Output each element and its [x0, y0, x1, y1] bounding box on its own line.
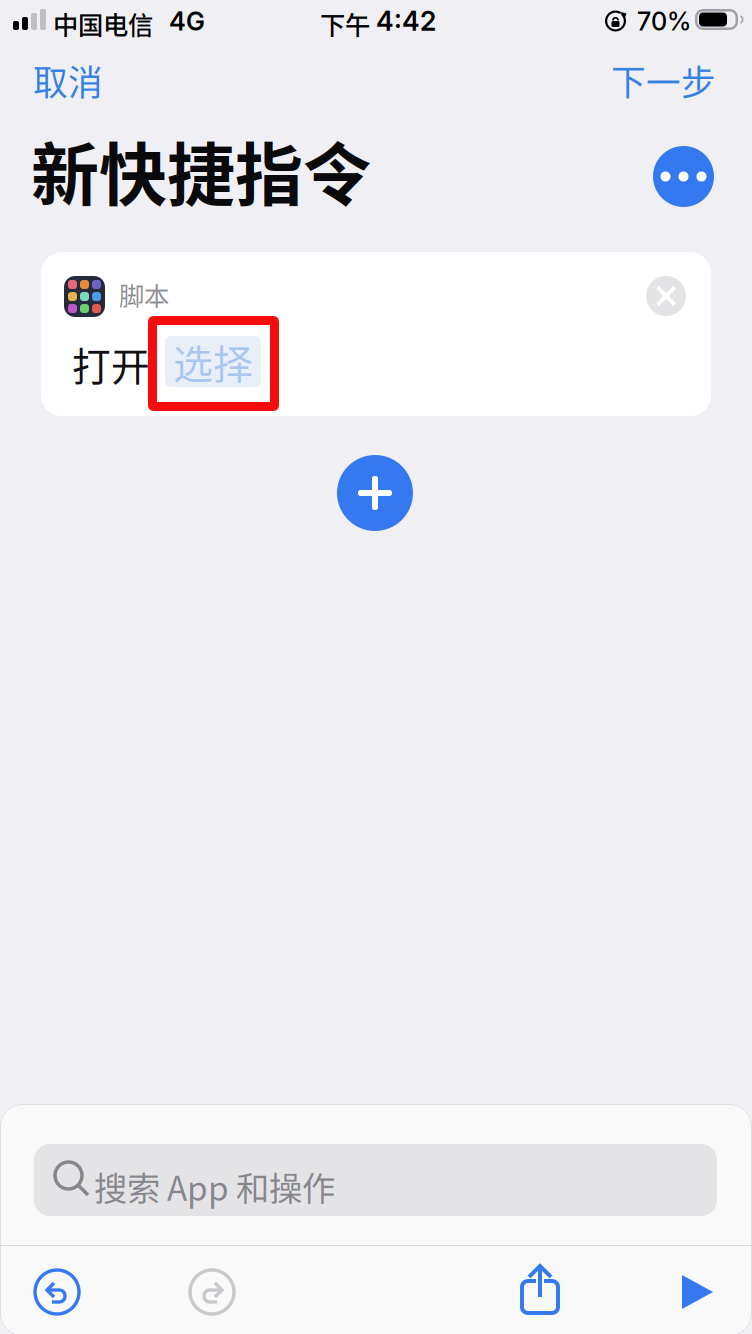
staticText: 下一步 — [611, 55, 716, 106]
staticText: 70% — [637, 6, 691, 37]
button[interactable]: 搜索 App 和操作 — [34, 1144, 717, 1216]
staticText: 4:42 — [376, 5, 436, 37]
staticText: 中国电信 — [53, 5, 153, 42]
staticText: 搜索 App 和操作 — [94, 1162, 335, 1210]
staticText: 4G — [169, 6, 205, 37]
button[interactable]: 取消 — [0, 43, 119, 118]
staticText: 取消 — [33, 55, 103, 106]
staticText: 选择 — [173, 332, 253, 390]
button[interactable]: Add action — [337, 455, 413, 531]
staticText: 新快捷指令 — [31, 121, 371, 219]
button[interactable]: Remove action — [646, 276, 686, 316]
staticText: 下午 — [320, 5, 376, 42]
button[interactable]: Run shortcut — [680, 1274, 715, 1310]
button[interactable]: More options — [653, 146, 714, 207]
staticText: 脚本 — [119, 276, 169, 313]
button[interactable]: 下一步 — [595, 43, 752, 118]
button[interactable]: Undo — [34, 1269, 80, 1315]
button[interactable]: Redo — [189, 1269, 235, 1315]
staticText: 打开 — [72, 336, 150, 392]
button[interactable]: Share — [521, 1265, 561, 1315]
